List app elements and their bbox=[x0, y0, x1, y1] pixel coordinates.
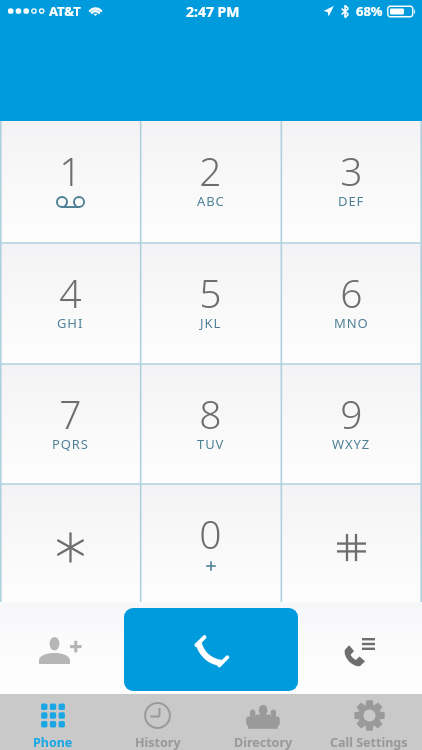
staticText: JKL bbox=[200, 314, 222, 332]
button[interactable]: Add contact bbox=[0, 602, 116, 694]
button[interactable]: Directory bbox=[210, 694, 316, 750]
button[interactable]: 5 bbox=[140, 243, 281, 364]
button[interactable]: 3 bbox=[281, 121, 422, 243]
staticText: 4 bbox=[59, 266, 82, 319]
button[interactable]: 0 bbox=[140, 484, 281, 602]
button[interactable]: Call bbox=[124, 608, 298, 691]
staticText: TUV bbox=[197, 435, 225, 453]
staticText: PQRS bbox=[52, 435, 89, 453]
staticText: ABC bbox=[197, 192, 225, 210]
staticText: DEF bbox=[338, 192, 365, 210]
staticText: WXYZ bbox=[332, 435, 371, 453]
staticText: 3 bbox=[340, 144, 363, 197]
staticText: 8 bbox=[199, 387, 222, 440]
staticText: 1 bbox=[59, 144, 82, 197]
staticText: Phone bbox=[33, 734, 73, 750]
staticText: MNO bbox=[334, 314, 369, 332]
staticText: AT&T bbox=[49, 2, 81, 20]
button[interactable]: Phone bbox=[0, 694, 105, 750]
staticText: 6 bbox=[340, 266, 363, 319]
button[interactable]: Call log bbox=[306, 602, 422, 694]
staticText: 68% bbox=[356, 2, 383, 20]
button[interactable] bbox=[281, 484, 422, 602]
button[interactable]: 6 bbox=[281, 243, 422, 364]
button[interactable]: 1 bbox=[0, 121, 140, 243]
button[interactable]: 7 bbox=[0, 364, 140, 484]
staticText: 2 bbox=[199, 144, 222, 197]
staticText: Call Settings bbox=[330, 734, 408, 750]
staticText: 7 bbox=[59, 387, 82, 440]
button[interactable] bbox=[0, 484, 140, 602]
button[interactable]: 4 bbox=[0, 243, 140, 364]
staticText: 2:47 PM bbox=[186, 2, 240, 21]
button[interactable]: 2 bbox=[140, 121, 281, 243]
staticText: History bbox=[135, 734, 181, 750]
button[interactable]: Call Settings bbox=[316, 694, 422, 750]
staticText: 0 bbox=[199, 507, 222, 560]
button[interactable]: 8 bbox=[140, 364, 281, 484]
button[interactable]: History bbox=[105, 694, 210, 750]
button[interactable]: 9 bbox=[281, 364, 422, 484]
staticText: GHI bbox=[57, 314, 84, 332]
staticText: 9 bbox=[340, 387, 363, 440]
staticText: 5 bbox=[199, 266, 222, 319]
staticText: Directory bbox=[234, 734, 293, 750]
